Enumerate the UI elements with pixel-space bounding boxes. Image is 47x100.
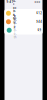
staticText: Shop — [14, 14, 17, 28]
button[interactable]: Shop — [5, 26, 44, 34]
staticText: food — [13, 10, 16, 24]
staticText: cloth — [14, 28, 17, 39]
staticText: $12 — [36, 11, 42, 15]
staticText: ooo — [34, 0, 40, 4]
staticText: car — [13, 20, 16, 23]
button[interactable]: Groc — [4, 9, 44, 17]
staticText: $44 — [36, 20, 42, 23]
staticText: Trans — [13, 9, 16, 20]
button[interactable]: Trans — [4, 17, 44, 26]
staticText: 9:41 — [6, 0, 13, 4]
staticText: Groc — [13, 0, 16, 10]
staticText: $9 — [38, 28, 42, 32]
